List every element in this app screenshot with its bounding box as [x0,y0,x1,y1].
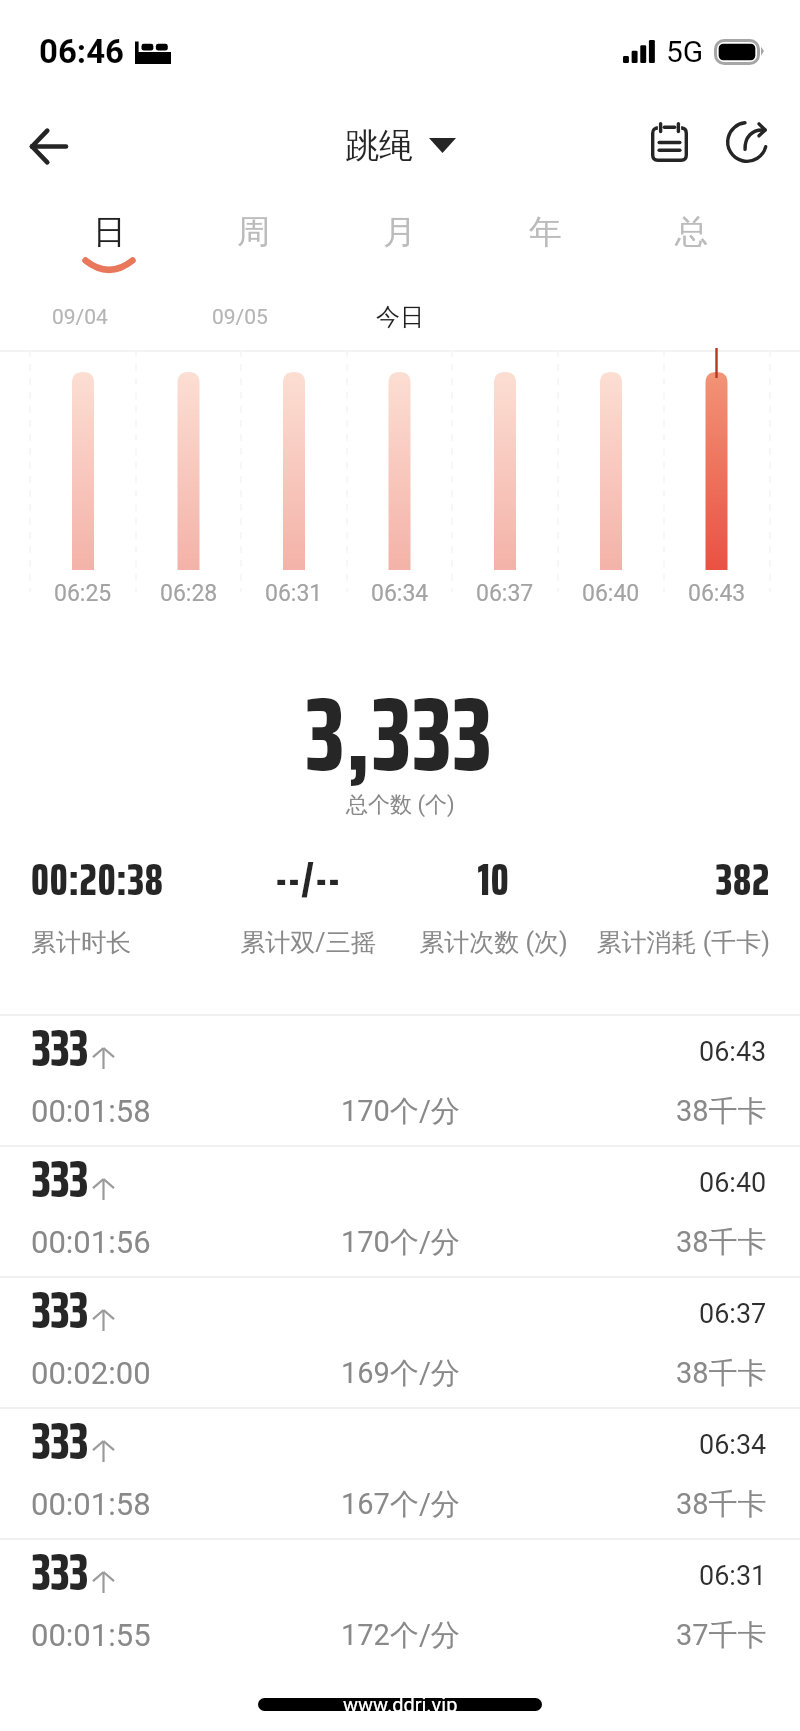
staticText: 总个数 (个) [346,791,455,819]
staticText: 38千卡 [676,1093,767,1130]
staticText: 10 [419,844,568,915]
button[interactable]: 日 [36,188,181,284]
staticText: 169个/分 [341,1355,460,1392]
staticText: 06:28 [160,580,218,607]
staticText: 06:31 [265,580,323,607]
staticText: 累计时长 [31,927,231,958]
staticText: 06:25 [54,580,112,607]
staticText: 167个/分 [341,1486,460,1523]
staticText: 38千卡 [676,1224,767,1261]
staticText: 周 [237,211,270,253]
staticText: 总 [675,211,708,253]
staticText: 累计次数 (次) [419,927,568,958]
staticText: 00:02:00 [31,1355,151,1391]
staticText: 00:01:55 [31,1617,151,1653]
staticText: 333 [32,1008,89,1088]
staticText: 06:34 [699,1429,767,1461]
staticText: 38千卡 [676,1355,767,1392]
staticText: 38千卡 [676,1486,767,1523]
staticText: 06:40 [699,1167,767,1199]
staticText: www.ddri.vip [343,1693,458,1716]
button[interactable]: 跳绳 [345,124,456,167]
staticText: 333 [32,1270,89,1350]
button[interactable]: 333 [0,1538,800,1669]
button[interactable]: Share [714,109,780,175]
staticText: --/-- [218,844,398,915]
staticText: 年 [529,211,562,253]
button[interactable]: 333 [0,1014,800,1145]
staticText: 333 [32,1532,89,1612]
staticText: 00:01:58 [31,1486,151,1522]
staticText: 170个/分 [341,1093,460,1130]
staticText: 月 [383,211,416,253]
staticText: 06:37 [476,580,534,607]
button[interactable]: 周 [181,188,326,284]
button[interactable]: 333 [0,1145,800,1276]
button[interactable]: Back [12,110,84,182]
staticText: 5G [666,34,704,69]
staticText: 00:01:58 [31,1093,151,1129]
staticText: 09/05 [212,305,268,330]
staticText: 333 [32,1401,89,1481]
staticText: 06:34 [371,580,429,607]
staticText: 06:40 [582,580,640,607]
staticText: 06:46 [39,32,125,71]
staticText: 06:37 [699,1298,767,1330]
staticText: 日 [93,211,126,253]
staticText: 06:31 [699,1560,767,1592]
staticText: 00:20:38 [31,844,231,915]
staticText: 06:43 [688,580,746,607]
staticText: 累计双/三摇 [218,927,398,958]
button[interactable]: 总 [618,188,764,284]
staticText: 09/04 [52,305,108,330]
button[interactable]: 333 [0,1407,800,1538]
staticText: 跳绳 [345,124,413,167]
staticText: 今日 [376,302,424,332]
staticText: 37千卡 [676,1617,767,1654]
staticText: 382 [589,844,770,915]
button[interactable]: Records [636,109,702,175]
staticText: 172个/分 [341,1617,460,1654]
staticText: 3,333 [306,652,494,816]
button[interactable]: 月 [326,188,472,284]
staticText: 00:01:56 [31,1224,151,1260]
staticText: 170个/分 [341,1224,460,1261]
staticText: 333 [32,1139,89,1219]
button[interactable]: 年 [472,188,618,284]
staticText: 06:43 [699,1036,767,1068]
staticText: 累计消耗 (千卡) [589,927,770,958]
button[interactable]: 333 [0,1276,800,1407]
